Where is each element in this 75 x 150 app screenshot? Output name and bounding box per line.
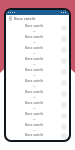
staticText: Bass satelit	[25, 45, 43, 50]
button[interactable]: Bass satelit	[6, 66, 69, 77]
staticText: 00	[33, 40, 36, 43]
staticText: 00	[33, 84, 36, 87]
button[interactable]: Bass satelit	[6, 99, 69, 110]
button[interactable]: Back	[8, 16, 13, 21]
staticText: 00	[33, 95, 36, 98]
staticText: Bass satelit	[25, 100, 43, 105]
button[interactable]: Bass satelit	[6, 44, 69, 55]
staticText: 00	[33, 128, 36, 131]
staticText: 00	[33, 29, 36, 32]
staticText: Bass satelit	[25, 89, 43, 94]
button[interactable]: Bass satelit	[6, 22, 69, 33]
button[interactable]: Bass satelit	[6, 132, 69, 140]
button[interactable]: Bass satelit	[6, 77, 69, 88]
staticText: 00	[33, 51, 36, 54]
button[interactable]: Bass satelit	[6, 55, 69, 66]
staticText: 00	[33, 106, 36, 109]
staticText: Bass satelit	[25, 23, 43, 28]
staticText: Bass satelit	[25, 78, 43, 83]
staticText: Bass satelit	[25, 67, 43, 72]
staticText: Bass satelit	[25, 132, 43, 137]
button[interactable]: Bass satelit	[6, 88, 69, 99]
staticText: Bass satelit	[25, 34, 43, 39]
button[interactable]: Bass satelit	[6, 110, 69, 121]
staticText: Bass satelit	[25, 122, 43, 127]
staticText: 00	[33, 62, 36, 65]
staticText: Bass satelit	[25, 111, 43, 116]
staticText: Bass satelit	[14, 16, 36, 21]
staticText: Bass satelit	[25, 56, 43, 61]
button[interactable]: Bass satelit	[6, 33, 69, 44]
staticText: 00	[33, 73, 36, 76]
staticText: 00	[33, 117, 36, 120]
button[interactable]: Bass satelit	[6, 121, 69, 132]
